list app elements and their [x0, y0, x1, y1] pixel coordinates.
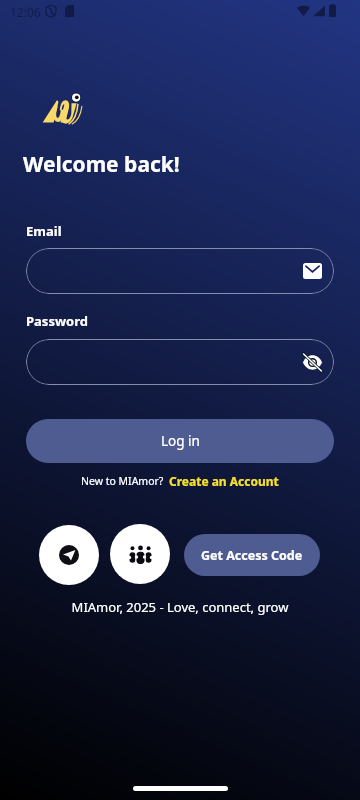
button[interactable]: Toggle password visibility [26, 339, 334, 385]
staticText: Create an Account [169, 473, 279, 489]
button[interactable]: Create an Account [169, 473, 279, 489]
staticText: Email [26, 222, 62, 240]
button[interactable]: Log in [26, 419, 334, 463]
staticText: Password [26, 312, 88, 330]
other: Email [303, 263, 322, 279]
staticText: MIAmor, 2025 - Love, connect, grow [0, 598, 360, 616]
staticText: Log in [161, 432, 200, 450]
button[interactable]: Get Access Code [184, 534, 320, 576]
other: Toggle password visibility [303, 354, 322, 371]
button[interactable]: Email [26, 248, 334, 294]
staticText: Get Access Code [201, 547, 303, 564]
staticText: Welcome back! [23, 150, 180, 179]
staticText: New to MIAmor? [81, 474, 164, 488]
staticText: 12:06 [10, 4, 41, 20]
button[interactable]: Telegram [39, 525, 99, 585]
button[interactable]: Community [110, 524, 170, 584]
